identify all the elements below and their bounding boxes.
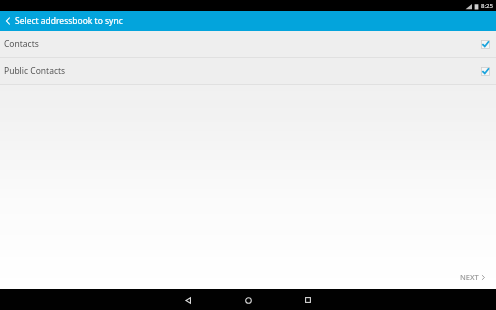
other: Checked — [481, 67, 490, 76]
button[interactable]: Home — [238, 290, 258, 310]
button[interactable]: NEXT — [450, 268, 496, 286]
staticText: Public Contacts — [4, 65, 481, 77]
button[interactable]: Recent apps — [298, 290, 318, 310]
staticText: Select addressbook to sync — [15, 15, 123, 27]
other: Checked — [481, 40, 490, 49]
other: Back — [4, 16, 12, 26]
button[interactable]: Public Contacts — [0, 58, 496, 84]
staticText: Contacts — [4, 38, 481, 50]
button[interactable]: Back — [0, 11, 496, 31]
staticText: NEXT — [460, 272, 479, 282]
staticText: 8:25 — [481, 2, 493, 10]
button[interactable]: Contacts — [0, 31, 496, 57]
button[interactable]: Back — [178, 290, 198, 310]
